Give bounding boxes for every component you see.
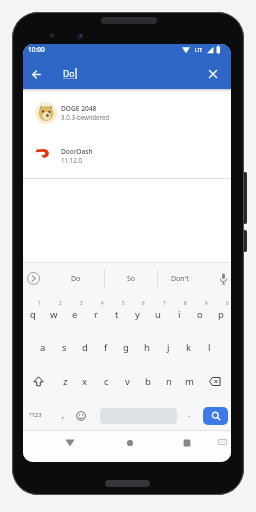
button[interactable] (27, 272, 40, 285)
staticText: 3 (80, 300, 83, 306)
button[interactable] (206, 373, 224, 389)
button[interactable]: j (138, 337, 198, 357)
staticText: y (135, 308, 140, 321)
button[interactable]: x (55, 371, 115, 391)
staticText: m (185, 375, 194, 388)
staticText: 0 (226, 300, 229, 306)
staticText: k (186, 341, 192, 354)
button[interactable] (61, 434, 79, 451)
staticText: DOGE 2048 (61, 104, 97, 113)
button[interactable]: y (107, 304, 167, 324)
button[interactable]: e (45, 304, 105, 324)
button[interactable]: o (170, 304, 230, 324)
staticText: t (115, 308, 119, 321)
button[interactable]: m (159, 371, 219, 391)
staticText: Do (71, 274, 81, 284)
staticText: ?123 (29, 411, 42, 419)
staticText: r (94, 308, 98, 321)
staticText: f (104, 341, 108, 354)
button[interactable]: u (128, 304, 188, 324)
staticText: u (155, 308, 161, 321)
staticText: a (40, 341, 46, 354)
button[interactable]: , (33, 404, 93, 424)
button[interactable]: p (191, 304, 231, 324)
staticText: Don't (171, 274, 189, 284)
button[interactable] (74, 408, 88, 423)
button[interactable] (121, 434, 139, 451)
staticText: x (82, 375, 88, 388)
staticText: 11.12.0 (61, 156, 83, 164)
staticText: 4 (101, 300, 104, 306)
button[interactable] (216, 272, 230, 286)
button[interactable] (29, 373, 47, 389)
staticText: c (104, 375, 109, 388)
button[interactable]: g (96, 337, 156, 357)
staticText: w (50, 308, 58, 321)
staticText: 7 (163, 300, 166, 306)
staticText: Do (63, 68, 75, 80)
staticText: s (62, 341, 67, 354)
button[interactable]: ?123 (23, 405, 65, 425)
staticText: e (72, 308, 78, 321)
staticText: 9 (205, 300, 208, 306)
button[interactable]: f (76, 337, 136, 357)
staticText: 10:00 (28, 45, 45, 54)
staticText: 5 (122, 300, 125, 306)
button[interactable]: r (66, 304, 126, 324)
staticText: v (125, 375, 130, 388)
staticText: b (145, 375, 151, 388)
button[interactable]: z (35, 371, 95, 391)
staticText: q (30, 308, 36, 321)
button[interactable]: a (23, 337, 73, 357)
staticText: 3.0.3-bewildered (61, 113, 110, 121)
staticText: , (62, 409, 65, 420)
button[interactable]: DoorDash (23, 140, 231, 178)
button[interactable]: So (101, 269, 161, 289)
staticText: So (127, 274, 136, 284)
staticText: p (218, 308, 224, 321)
staticText: o (197, 308, 203, 321)
button[interactable]: Do (46, 269, 106, 289)
button[interactable] (214, 435, 230, 450)
button[interactable]: c (76, 371, 136, 391)
button[interactable] (28, 66, 45, 83)
staticText: . (188, 408, 191, 419)
staticText: h (144, 341, 150, 354)
staticText: LTE (195, 47, 203, 53)
button[interactable]: v (97, 371, 157, 391)
button[interactable] (178, 434, 196, 451)
button[interactable]: q (23, 304, 63, 324)
staticText: 8 (184, 300, 187, 306)
staticText: g (123, 341, 129, 354)
staticText: n (166, 375, 172, 388)
button[interactable] (205, 66, 221, 82)
staticText: l (208, 341, 211, 354)
button[interactable]: n (139, 371, 199, 391)
staticText: i (178, 308, 181, 321)
button[interactable]: l (179, 337, 231, 357)
button[interactable]: s (34, 337, 94, 357)
button[interactable]: . (159, 403, 219, 423)
button[interactable]: i (149, 304, 209, 324)
staticText: d (82, 341, 88, 354)
staticText: z (63, 375, 68, 388)
staticText: DoorDash (61, 147, 93, 156)
button[interactable] (203, 407, 228, 425)
button[interactable]: Don't (150, 269, 210, 289)
button[interactable]: b (118, 371, 178, 391)
staticText: 1 (38, 300, 41, 306)
staticText: j (167, 341, 170, 354)
button[interactable]: h (117, 337, 177, 357)
button[interactable]: k (159, 337, 219, 357)
staticText: 6 (142, 300, 145, 306)
button[interactable]: DOGE 2048 (23, 94, 231, 133)
button[interactable]: d (55, 337, 115, 357)
button[interactable]: w (24, 304, 84, 324)
staticText: 2 (59, 300, 62, 306)
button[interactable]: t (87, 304, 147, 324)
